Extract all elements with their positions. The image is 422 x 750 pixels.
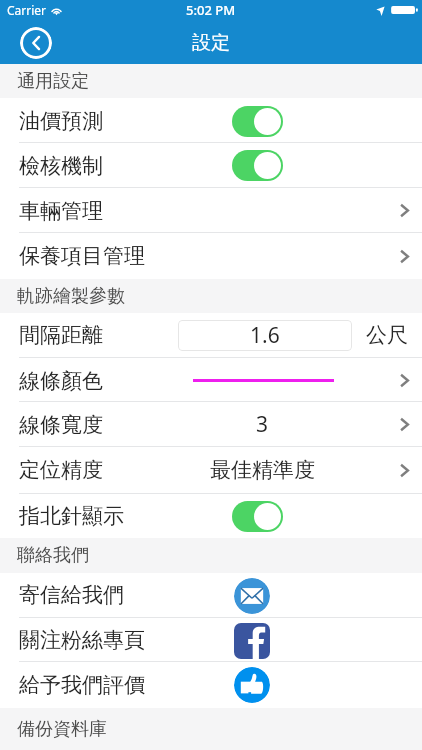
staticText: 公尺 [366, 322, 408, 348]
staticText: 油價預測 [19, 108, 103, 134]
staticText: 1.6 [250, 321, 280, 350]
button[interactable]: Toggle [232, 501, 283, 532]
button[interactable]: Back [20, 27, 52, 59]
staticText: 5:02 PM [186, 1, 236, 19]
button[interactable]: Rate us [234, 667, 270, 703]
staticText: 通用設定 [17, 70, 89, 93]
staticText: 3 [256, 410, 269, 439]
staticText: 備份資料庫 [17, 718, 107, 741]
staticText: 保養項目管理 [19, 243, 145, 269]
staticText: 關注粉絲專頁 [19, 627, 145, 653]
staticText: 檢核機制 [19, 153, 103, 179]
staticText: 寄信給我們 [19, 582, 124, 608]
staticText: 線條寬度 [19, 412, 103, 438]
staticText: 軌跡繪製參數 [17, 285, 125, 308]
button[interactable]: Send mail [234, 578, 270, 614]
button[interactable]: Facebook page [234, 623, 270, 659]
staticText: 聯絡我們 [17, 544, 89, 567]
staticText: 線條顏色 [19, 368, 103, 394]
staticText: 設定 [192, 31, 230, 55]
button[interactable]: 1.6 [178, 320, 352, 351]
staticText: Carrier [7, 2, 47, 18]
staticText: 定位精度 [19, 457, 103, 483]
button[interactable]: Toggle [232, 150, 283, 181]
staticText: 最佳精準度 [210, 457, 315, 483]
staticText: 車輛管理 [19, 198, 103, 224]
button[interactable]: Toggle [232, 106, 283, 137]
staticText: 間隔距離 [19, 322, 103, 348]
staticText: 給予我們評價 [19, 672, 145, 698]
staticText: 指北針顯示 [19, 503, 124, 529]
